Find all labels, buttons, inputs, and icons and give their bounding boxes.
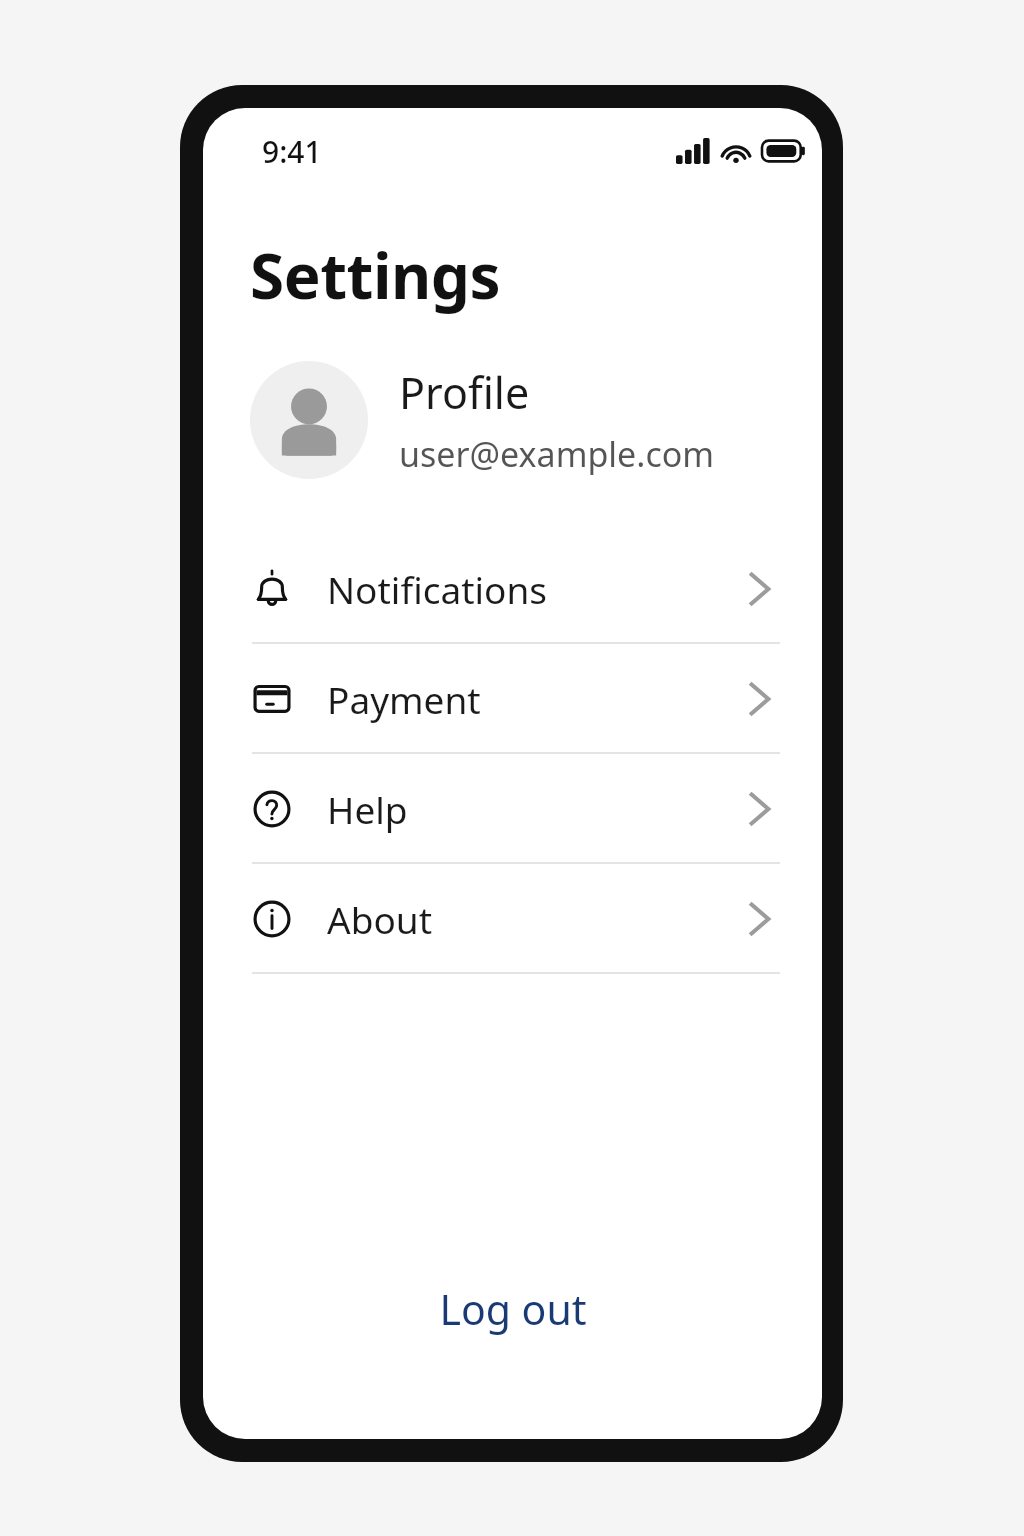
staticText: Help xyxy=(327,784,408,834)
button[interactable]: About xyxy=(249,864,777,974)
staticText: Profile xyxy=(399,363,530,422)
staticText: Notifications xyxy=(327,564,548,614)
button[interactable]: Profile xyxy=(250,361,775,479)
staticText: Payment xyxy=(327,674,481,724)
button[interactable]: Notifications xyxy=(249,534,777,644)
staticText: Settings xyxy=(250,233,501,317)
staticText: Log out xyxy=(439,1281,587,1337)
staticText: 9:41 xyxy=(262,131,322,171)
staticText: user@example.com xyxy=(399,431,715,477)
button[interactable]: Log out xyxy=(383,1276,643,1342)
button[interactable]: Help xyxy=(249,754,777,864)
staticText: About xyxy=(327,894,433,944)
button[interactable]: Payment xyxy=(249,644,777,754)
